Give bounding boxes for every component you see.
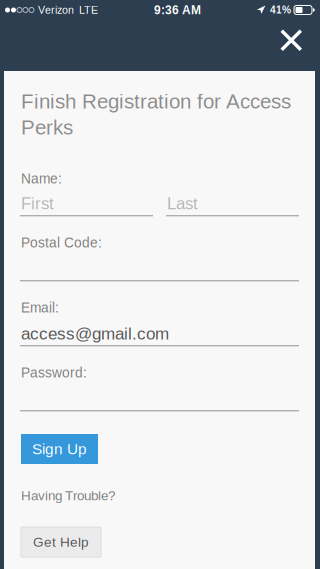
staticText: Sign Up [32, 440, 87, 457]
button[interactable]: Close [270, 18, 312, 62]
staticText: Finish Registration for Access Perks [21, 90, 291, 139]
staticText: access@gmail.com [21, 324, 169, 343]
staticText: 41% [270, 4, 291, 16]
staticText: Last [167, 194, 198, 213]
staticText: LTE [79, 4, 98, 16]
button[interactable]: Sign Up [21, 434, 98, 464]
staticText: Name: [21, 171, 62, 186]
staticText: Having Trouble? [21, 488, 115, 503]
staticText: First [21, 194, 54, 213]
staticText: Get Help [33, 534, 89, 550]
staticText: Verizon [38, 4, 74, 16]
button[interactable]: Get Help [21, 527, 101, 557]
staticText: Postal Code: [21, 235, 102, 250]
staticText: 9:36 AM [154, 3, 201, 17]
staticText: Email: [21, 300, 59, 315]
staticText: Password: [21, 365, 87, 380]
